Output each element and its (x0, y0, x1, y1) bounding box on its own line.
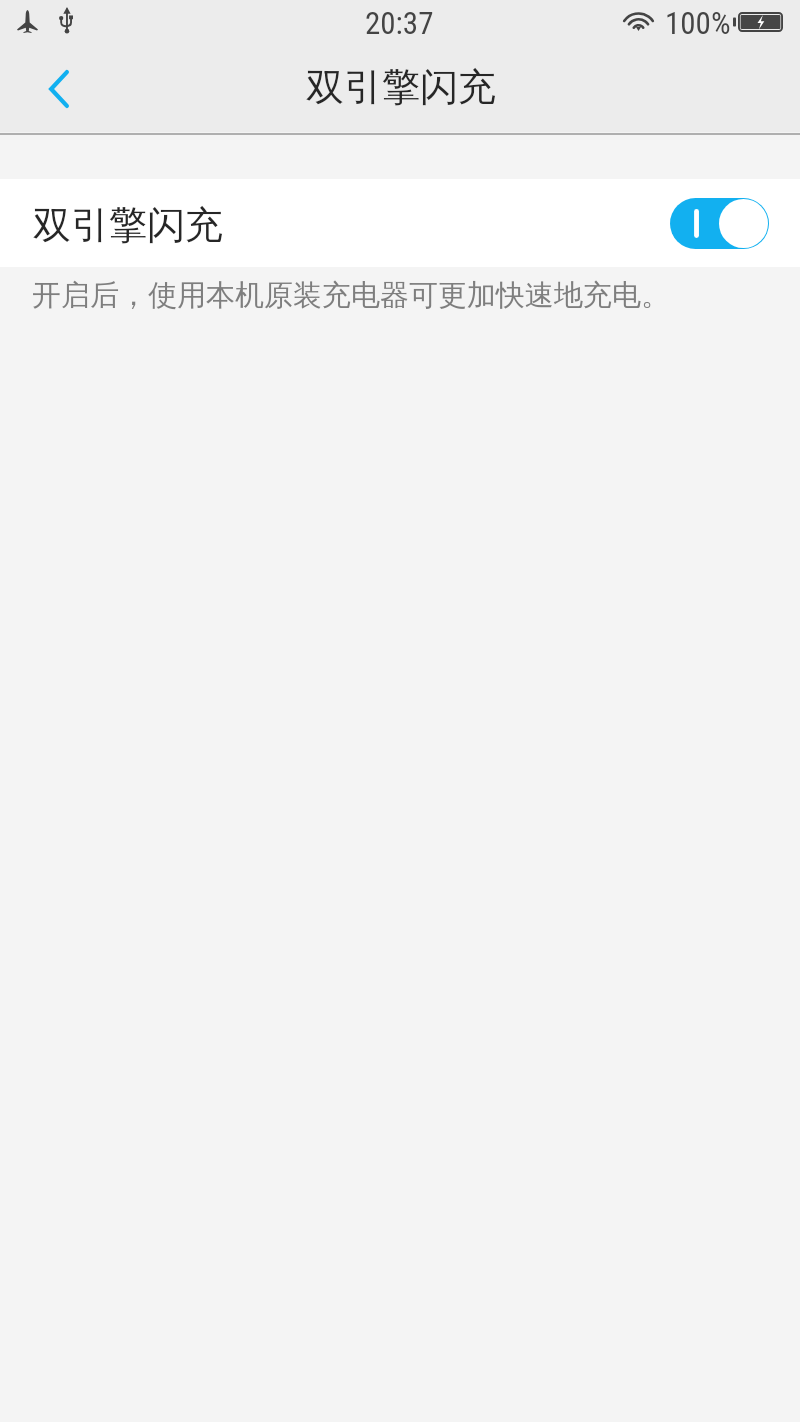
staticText: 100% (665, 5, 731, 41)
staticText: 开启后，使用本机原装充电器可更加快速地充电。 (32, 277, 670, 314)
staticText: 双引擎闪充 (306, 63, 496, 111)
staticText: 20:37 (365, 5, 434, 41)
button[interactable]: 双引擎闪充 (0, 179, 800, 267)
button[interactable]: Back (0, 50, 104, 132)
staticText: 双引擎闪充 (33, 201, 223, 249)
button[interactable]: Dual engine flash charge toggle (670, 198, 769, 249)
